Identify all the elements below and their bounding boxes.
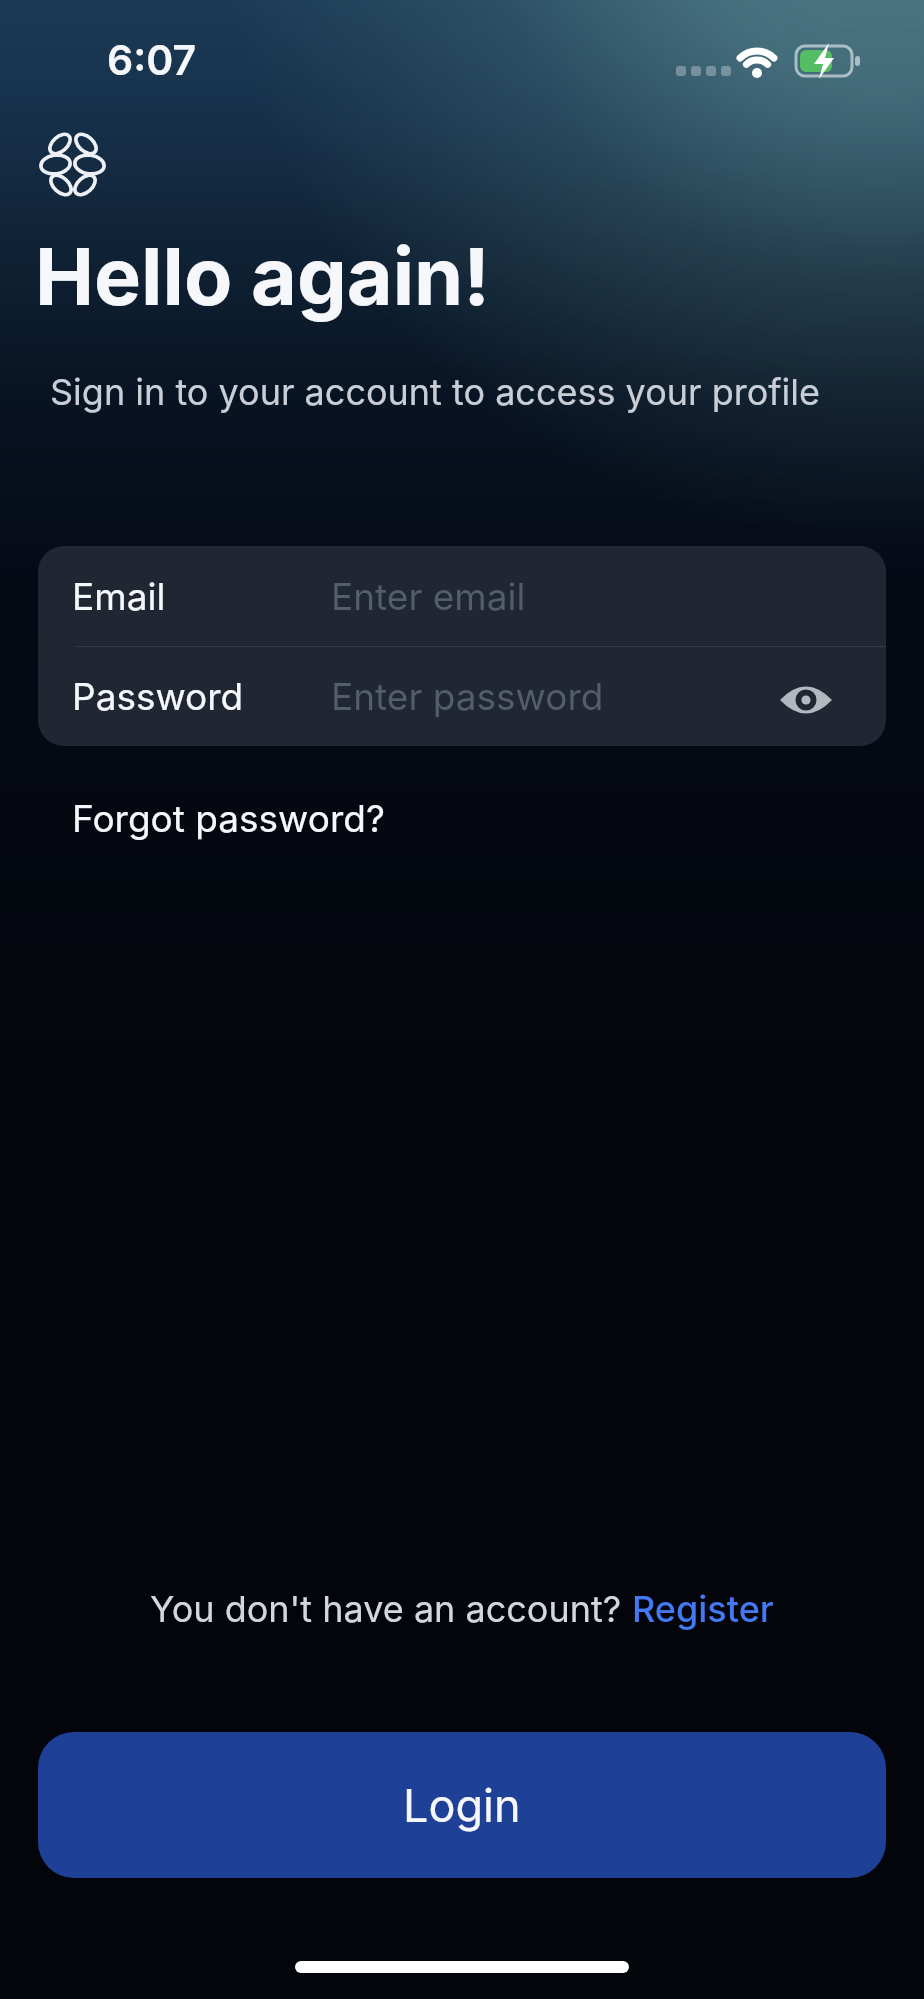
button[interactable]: Email: [38, 546, 886, 646]
staticText: Sign in to your account to access your p…: [50, 370, 821, 414]
button[interactable]: Register: [632, 1587, 774, 1631]
button[interactable]: Login: [38, 1732, 886, 1878]
button[interactable]: Password: [38, 647, 886, 746]
staticText: Enter email: [331, 574, 526, 619]
staticText: Password: [72, 674, 244, 719]
staticText: Enter password: [331, 674, 604, 719]
button[interactable]: [780, 682, 832, 718]
button[interactable]: Forgot password?: [72, 796, 385, 841]
staticText: Email: [72, 574, 166, 619]
staticText: You don't have an account?: [150, 1587, 632, 1631]
staticText: 6:07: [107, 35, 197, 85]
staticText: Login: [403, 1778, 521, 1832]
staticText: Hello again!: [35, 228, 490, 324]
